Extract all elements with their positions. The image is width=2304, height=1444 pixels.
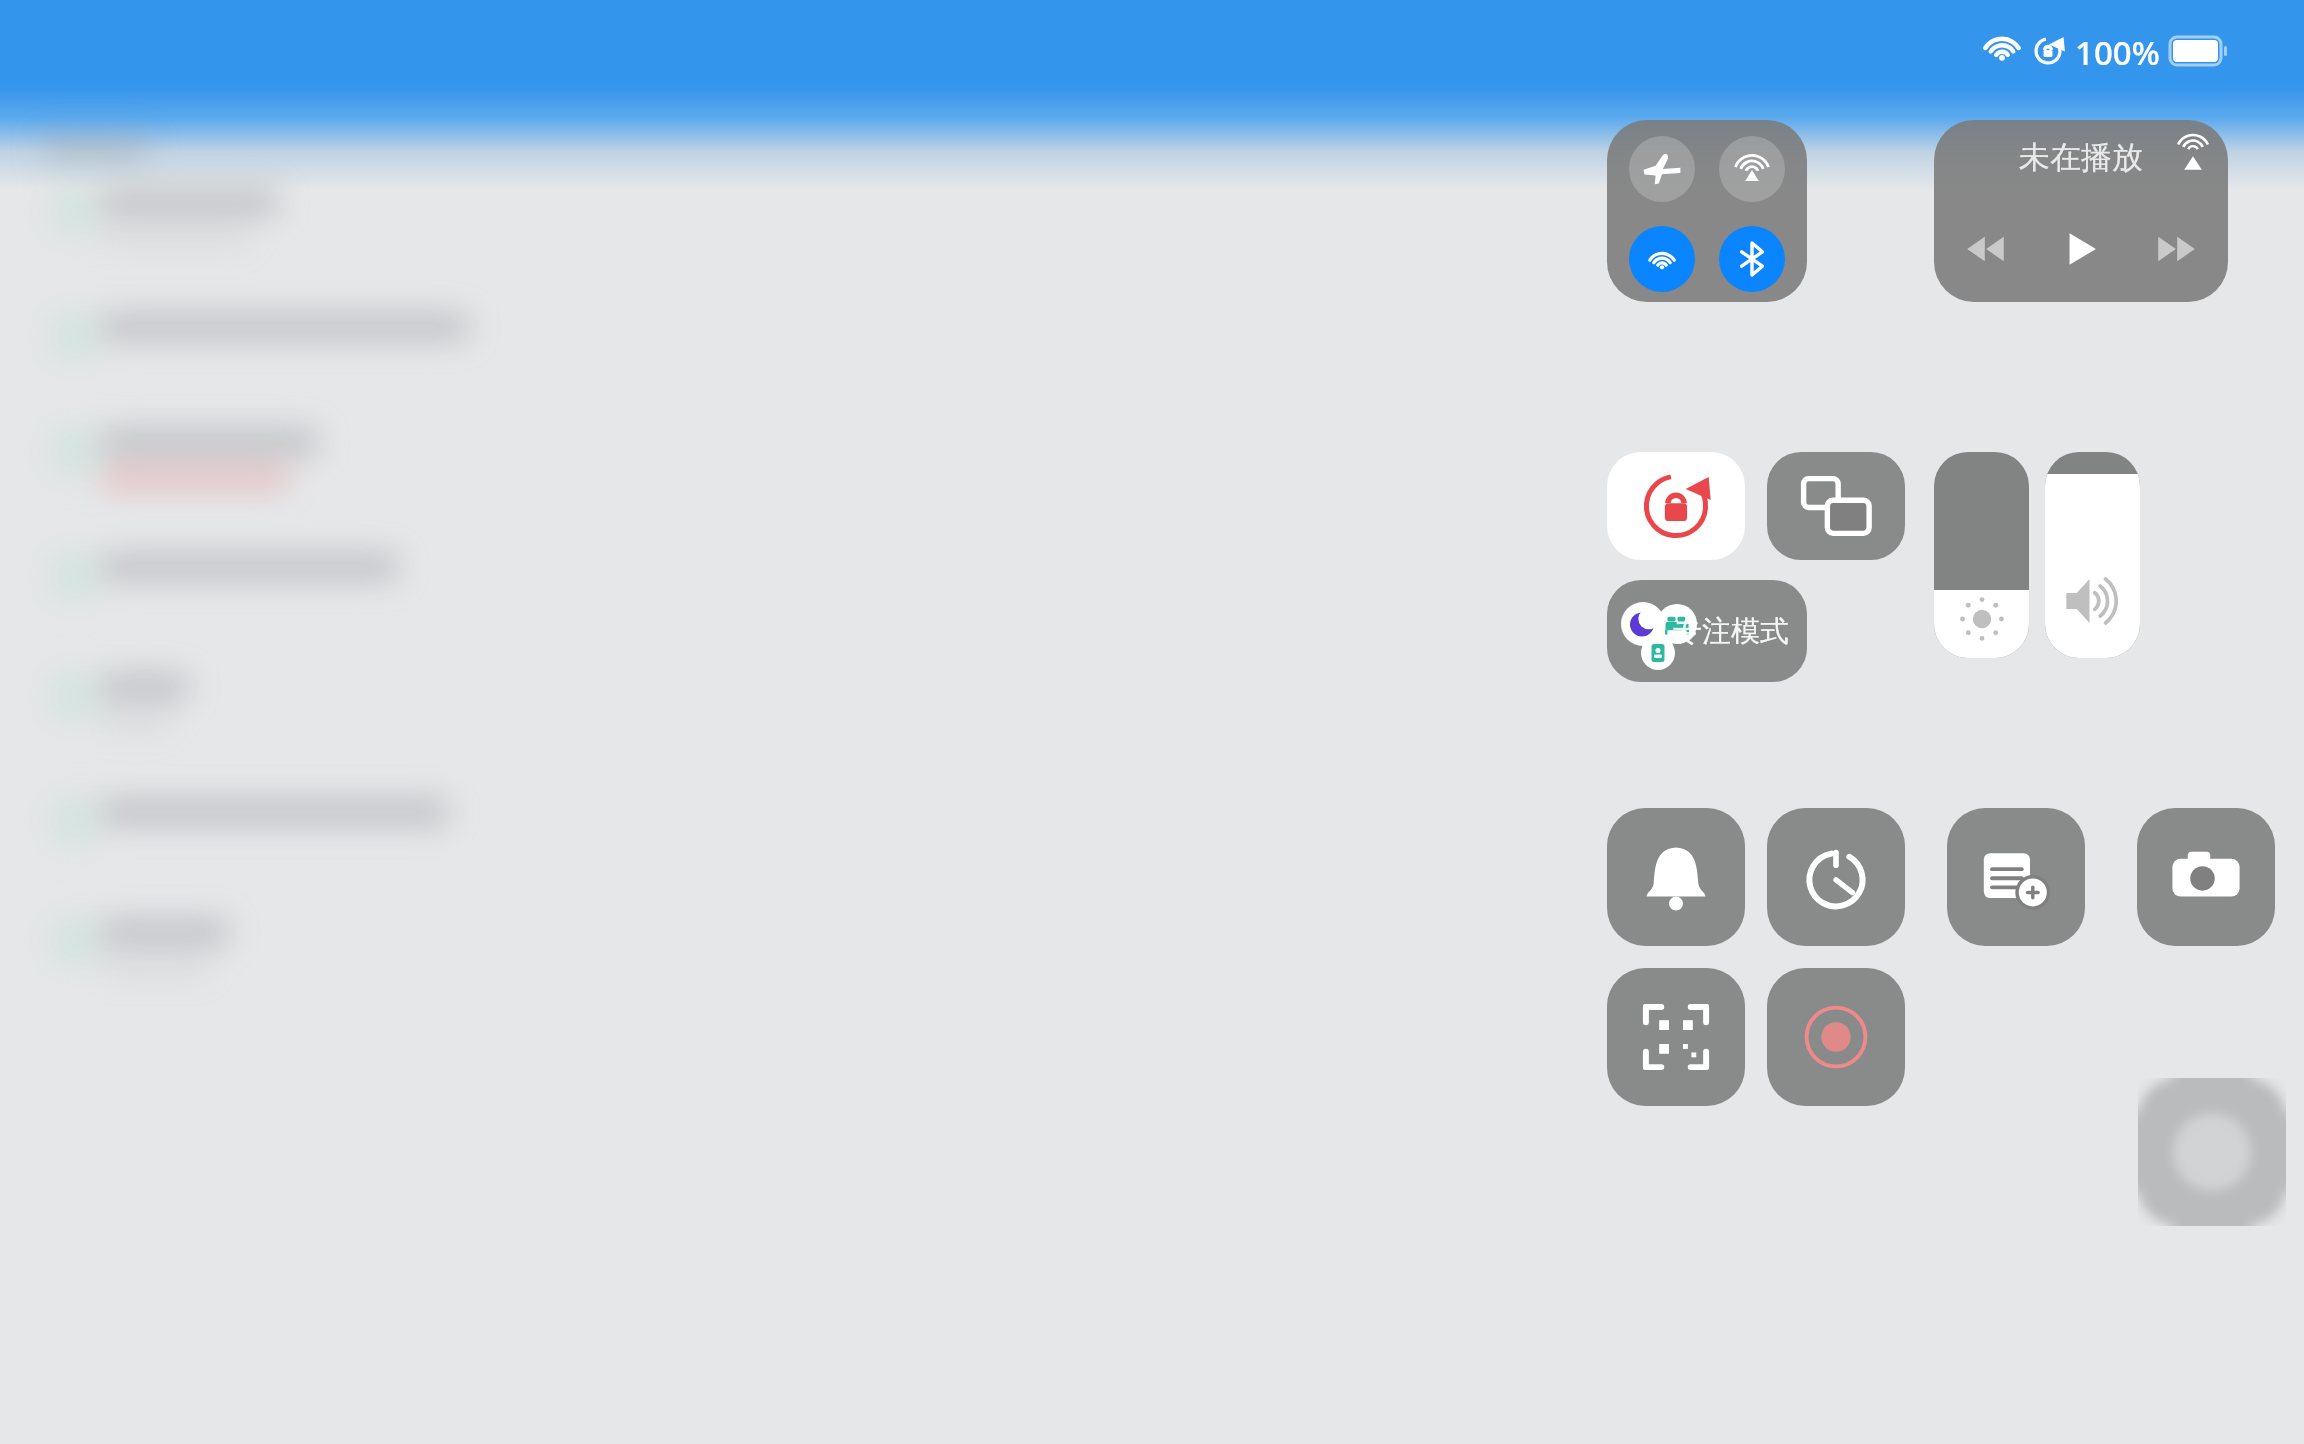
button[interactable]: AirPlay <box>1934 120 2228 302</box>
button[interactable]: Bluetooth <box>1719 226 1785 292</box>
button[interactable]: Volume <box>2045 452 2140 658</box>
button[interactable]: Camera <box>2137 808 2275 946</box>
button[interactable]: AssistiveTouch <box>2138 1078 2286 1226</box>
button[interactable]: Previous <box>1960 222 2014 276</box>
button[interactable]: New note <box>1947 808 2085 946</box>
button[interactable]: AirDrop <box>1719 136 1785 202</box>
button[interactable]: Next <box>2148 222 2202 276</box>
button[interactable]: Brightness <box>1934 452 2029 658</box>
button[interactable]: Focus <box>1607 580 1807 682</box>
button[interactable]: Wi-Fi <box>1629 226 1695 292</box>
button[interactable]: Screen mirroring <box>1767 452 1905 560</box>
button[interactable]: Timer <box>1767 808 1905 946</box>
staticText: 未在播放 <box>2019 138 2143 177</box>
staticText: 专注模式 <box>1673 613 1789 650</box>
staticText: 100% <box>2075 30 2160 72</box>
button[interactable]: Airplane mode <box>1629 136 1695 202</box>
button[interactable]: Screen recording <box>1767 968 1905 1106</box>
button[interactable]: Play <box>2054 222 2108 276</box>
button[interactable]: Scan QR code <box>1607 968 1745 1106</box>
button[interactable]: Silent mode <box>1607 808 1745 946</box>
button[interactable]: AirPlay <box>2170 130 2216 176</box>
button[interactable]: Rotation lock <box>1607 452 1745 560</box>
